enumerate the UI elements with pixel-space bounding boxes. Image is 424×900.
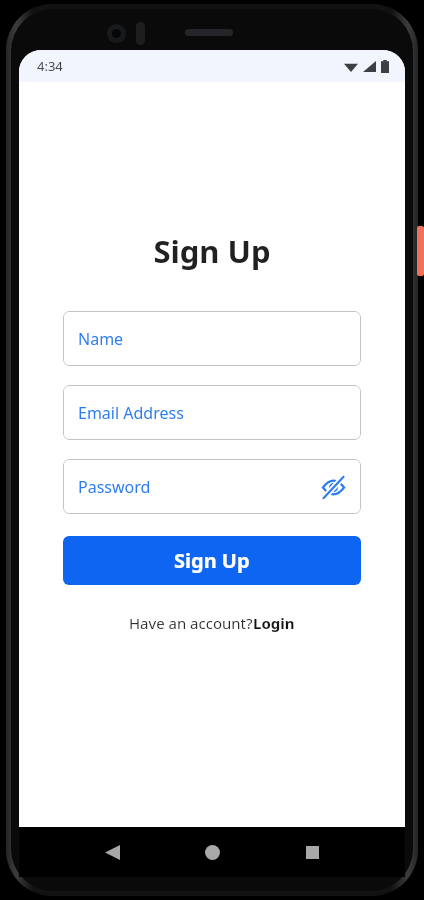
button[interactable]: Sign Up bbox=[63, 536, 361, 585]
staticText: Have an account? bbox=[129, 613, 253, 633]
staticText: Email Address bbox=[78, 402, 184, 424]
button[interactable]: Home bbox=[195, 835, 229, 869]
staticText: 4:34 bbox=[37, 57, 63, 75]
button[interactable]: Password bbox=[63, 459, 361, 514]
button[interactable]: Back bbox=[95, 835, 129, 869]
staticText: Login bbox=[253, 613, 295, 633]
staticText: Password bbox=[78, 476, 151, 498]
button[interactable]: Recent apps bbox=[295, 835, 329, 869]
button[interactable]: Show password bbox=[318, 472, 348, 502]
staticText: Sign Up bbox=[153, 230, 271, 272]
button[interactable]: Email Address bbox=[63, 385, 361, 440]
button[interactable]: Have an account? bbox=[125, 609, 299, 637]
staticText: Sign Up bbox=[174, 547, 250, 574]
button[interactable]: Name bbox=[63, 311, 361, 366]
staticText: Name bbox=[78, 328, 124, 350]
